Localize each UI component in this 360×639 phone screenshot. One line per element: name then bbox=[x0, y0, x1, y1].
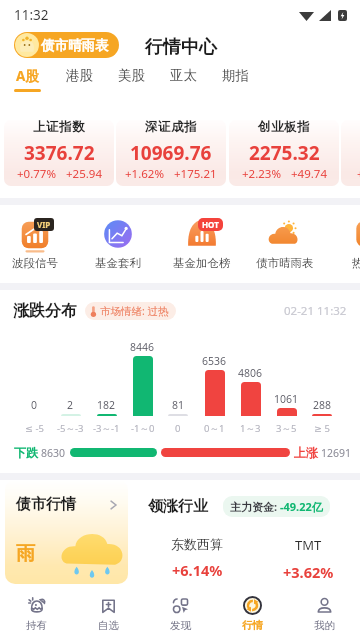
staticText: 11:32 bbox=[14, 6, 49, 24]
staticText: 债市晴雨表 bbox=[41, 37, 109, 54]
staticText: 02-21 11:32 bbox=[284, 303, 347, 319]
staticText: 基金套利 bbox=[95, 256, 141, 270]
staticText: 上证指数 bbox=[33, 120, 86, 135]
staticText: 182 bbox=[97, 398, 116, 412]
staticText: ≥ 5 bbox=[314, 422, 330, 435]
button[interactable]: 热门榜 bbox=[327, 205, 360, 283]
staticText: 行情 bbox=[242, 619, 263, 632]
staticText: 12691 bbox=[321, 446, 352, 460]
staticText: +6.14% bbox=[172, 560, 223, 580]
button[interactable]: 债市晴雨表 bbox=[243, 205, 327, 283]
staticText: 深证成指 bbox=[145, 120, 198, 135]
staticText: 0～1 bbox=[204, 422, 225, 435]
staticText: 8630 bbox=[41, 446, 66, 460]
staticText: 持有 bbox=[26, 619, 47, 632]
staticText: 雨 bbox=[16, 542, 35, 566]
button[interactable]: 领涨行业 bbox=[134, 480, 360, 584]
button[interactable]: 我的 Profile bbox=[288, 586, 360, 639]
staticText: 81 bbox=[172, 398, 185, 412]
button[interactable]: HOT bbox=[160, 205, 244, 283]
staticText: 港股 bbox=[66, 67, 93, 84]
staticText: 美股 bbox=[118, 67, 145, 84]
staticText: 我的 bbox=[314, 619, 335, 632]
staticText: 2 bbox=[67, 398, 74, 412]
staticText: +2.23% bbox=[242, 166, 281, 182]
button[interactable]: VIP bbox=[0, 205, 77, 283]
staticText: 领涨行业 bbox=[148, 497, 208, 516]
staticText: 债市行情 bbox=[16, 495, 76, 514]
button[interactable]: 创业板指 bbox=[229, 120, 339, 186]
staticText: 基金加仓榜 bbox=[173, 256, 231, 270]
button[interactable]: 市场情绪: 过热 bbox=[85, 302, 176, 320]
button[interactable]: 深证成指 bbox=[116, 120, 226, 186]
staticText: +5.14% bbox=[357, 166, 360, 182]
staticText: 3～5 bbox=[276, 422, 297, 435]
staticText: 288 bbox=[313, 398, 332, 412]
staticText: 自选 bbox=[98, 619, 119, 632]
staticText: 创业板指 bbox=[258, 120, 311, 135]
staticText: 6536 bbox=[202, 354, 227, 368]
staticText: +49.74 bbox=[291, 166, 327, 182]
staticText: 期指 bbox=[222, 67, 249, 84]
staticText: 下跌 bbox=[14, 445, 38, 460]
button[interactable]: 基金套利 bbox=[76, 205, 160, 283]
staticText: ≤ -5 bbox=[25, 422, 44, 435]
staticText: 0 bbox=[175, 422, 181, 435]
staticText: 2275.32 bbox=[249, 140, 320, 166]
staticText: 发现 bbox=[170, 619, 191, 632]
staticText: VIP bbox=[37, 219, 51, 230]
button[interactable]: 自选 Watchlist bbox=[72, 586, 144, 639]
staticText: TMT bbox=[295, 536, 322, 554]
staticText: 上涨 bbox=[294, 445, 318, 460]
staticText: -3～-1 bbox=[93, 422, 120, 435]
staticText: 市场情绪: 过热 bbox=[100, 304, 169, 318]
button[interactable]: 债市行情 bbox=[5, 480, 128, 584]
button[interactable]: A股 bbox=[1, 64, 53, 104]
staticText: 1～3 bbox=[240, 422, 261, 435]
button[interactable]: 发现 Discover bbox=[144, 586, 216, 639]
staticText: 3376.72 bbox=[24, 140, 95, 166]
staticText: 东数西算 bbox=[171, 536, 223, 552]
button[interactable]: 科创50 bbox=[341, 120, 360, 186]
staticText: 涨跌分布 bbox=[13, 301, 77, 321]
staticText: 热门榜 bbox=[352, 256, 360, 270]
button[interactable]: 上证指数 bbox=[4, 120, 114, 186]
staticText: +0.77% bbox=[17, 166, 56, 182]
button[interactable]: 债市晴雨表 bbox=[14, 32, 119, 58]
staticText: +1.62% bbox=[125, 166, 164, 182]
staticText: -49.22亿 bbox=[280, 499, 323, 514]
staticText: 亚太 bbox=[170, 67, 197, 84]
button[interactable]: 行情 Markets bbox=[216, 586, 288, 639]
staticText: 1061 bbox=[274, 392, 299, 406]
button[interactable]: 美股 bbox=[105, 64, 157, 104]
button[interactable]: 港股 bbox=[53, 64, 105, 104]
button[interactable]: 东数西算 bbox=[134, 536, 260, 580]
staticText: 8446 bbox=[130, 340, 155, 354]
button[interactable]: TMT bbox=[260, 536, 356, 582]
button[interactable]: 持有 Holdings bbox=[0, 586, 72, 639]
staticText: 波段信号 bbox=[12, 256, 58, 270]
button[interactable]: 亚太 bbox=[157, 64, 209, 104]
staticText: +25.94 bbox=[66, 166, 102, 182]
staticText: HOT bbox=[202, 219, 219, 230]
staticText: 主力资金: bbox=[230, 499, 280, 514]
staticText: -5～-3 bbox=[57, 422, 84, 435]
staticText: +3.62% bbox=[283, 562, 334, 582]
staticText: 0 bbox=[31, 398, 38, 412]
staticText: -1～0 bbox=[131, 422, 155, 435]
staticText: 债市晴雨表 bbox=[256, 256, 314, 270]
staticText: +175.21 bbox=[174, 166, 217, 182]
staticText: A股 bbox=[16, 67, 39, 85]
staticText: 4806 bbox=[238, 366, 263, 380]
staticText: 行情中心 bbox=[145, 36, 217, 59]
staticText: 10969.76 bbox=[130, 140, 212, 166]
button[interactable]: 期指 bbox=[209, 64, 261, 104]
